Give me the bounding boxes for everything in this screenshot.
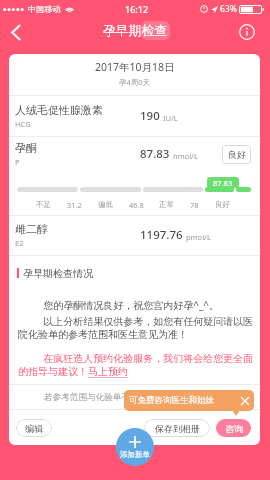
staticText: 人绒毛促性腺激素 bbox=[15, 103, 103, 117]
staticText: 您的孕酮情况良好，祝您宫内好孕^_^。 bbox=[18, 298, 220, 312]
staticText: 31.2 bbox=[67, 200, 82, 210]
staticText: 若参考范围与化验单不符，可手动修改参考范围 bbox=[44, 392, 225, 403]
button[interactable]: Back bbox=[4, 20, 28, 44]
staticText: 编辑 bbox=[25, 423, 43, 434]
staticText: 正常 bbox=[159, 200, 174, 209]
button[interactable]: 在疯狂造人预约化验服务，我们将会给您更全面的指导与建议！马上预约 bbox=[18, 351, 258, 378]
staticText: 咨询 bbox=[225, 423, 243, 434]
staticText: 良好 bbox=[215, 200, 230, 209]
staticText: 中国移动 bbox=[28, 4, 61, 14]
staticText: 孕4周0天 bbox=[119, 77, 151, 87]
button[interactable]: 保存到相册 bbox=[144, 419, 210, 437]
staticText: 78 bbox=[190, 200, 199, 210]
staticText: HCG bbox=[15, 119, 31, 129]
staticText: 孕早期检查情况 bbox=[23, 267, 93, 280]
staticText: 63% bbox=[220, 3, 237, 15]
button[interactable]: 咨询 bbox=[216, 419, 251, 437]
staticText: 16:12 bbox=[125, 3, 149, 15]
staticText: 雌二醇 bbox=[15, 222, 48, 236]
staticText: 孕早期检查 bbox=[103, 23, 167, 39]
button[interactable]: 编辑 bbox=[16, 419, 52, 437]
staticText: 添加新单 bbox=[120, 450, 150, 459]
staticText: 87.83 bbox=[140, 146, 170, 162]
staticText: 2017年10月18日 bbox=[95, 60, 175, 74]
staticText: 偏低 bbox=[98, 200, 113, 209]
staticText: 190 bbox=[140, 108, 160, 124]
staticText: 以上分析结果仅供参考，如您有任何疑问请以医院化验单的参考范围和医生意见为准！ bbox=[18, 314, 258, 341]
staticText: 良好 bbox=[228, 149, 246, 160]
button[interactable]: 可免费咨询医生和姐妹 bbox=[124, 390, 254, 411]
staticText: IU/L bbox=[163, 113, 178, 123]
staticText: E2 bbox=[15, 238, 24, 248]
staticText: 1197.76 bbox=[140, 227, 183, 243]
staticText: 87.83 bbox=[213, 178, 233, 188]
staticText: pmol/L bbox=[186, 232, 211, 242]
button[interactable]: 良好 bbox=[222, 145, 251, 164]
staticText: 保存到相册 bbox=[155, 423, 200, 434]
staticText: P bbox=[15, 157, 20, 167]
button[interactable]: Info bbox=[235, 20, 259, 44]
staticText: 不足 bbox=[36, 200, 51, 209]
staticText: 46.8 bbox=[129, 200, 144, 210]
button[interactable]: 添加新单 bbox=[116, 428, 154, 466]
staticText: 可免费咨询医生和姐妹 bbox=[129, 395, 214, 406]
staticText: nmol/L bbox=[173, 151, 198, 161]
staticText: 孕酮 bbox=[15, 141, 37, 155]
